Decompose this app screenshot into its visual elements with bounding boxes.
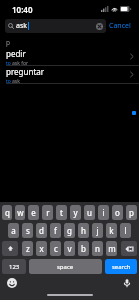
- staticText: q: [5, 207, 10, 218]
- button[interactable]: w: [15, 205, 25, 220]
- button[interactable]: preguntar: [0, 66, 139, 84]
- staticText: p: [129, 207, 134, 218]
- button[interactable]: s: [22, 223, 33, 238]
- staticText: e: [31, 207, 36, 218]
- staticText: b: [81, 243, 86, 254]
- staticText: 123: [9, 263, 20, 271]
- staticText: pedir: [6, 48, 26, 59]
- button[interactable]: space: [29, 259, 102, 274]
- button[interactable]: u: [84, 205, 95, 220]
- button[interactable]: a: [8, 223, 19, 238]
- button[interactable]: r: [42, 205, 53, 220]
- button[interactable]: j: [92, 223, 103, 238]
- button[interactable]: search: [105, 259, 137, 274]
- staticText: preguntar: [6, 66, 45, 77]
- staticText: z: [26, 243, 30, 254]
- button[interactable]: y: [70, 205, 81, 220]
- button[interactable]: e: [28, 205, 39, 220]
- button[interactable]: Backspace: [121, 241, 137, 256]
- staticText: ask: [16, 21, 28, 31]
- staticText: n: [95, 243, 100, 254]
- staticText: o: [115, 207, 120, 218]
- button[interactable]: Clear text: [96, 23, 103, 30]
- button[interactable]: o: [112, 205, 123, 220]
- button[interactable]: k: [106, 223, 117, 238]
- staticText: a: [11, 225, 16, 236]
- staticText: 10:40: [12, 4, 33, 15]
- staticText: j: [96, 225, 99, 236]
- button[interactable]: q: [2, 205, 12, 220]
- staticText: space: [57, 263, 74, 271]
- button[interactable]: pedir: [0, 48, 139, 66]
- button[interactable]: p: [126, 205, 137, 220]
- button[interactable]: Dictate: [122, 278, 132, 288]
- staticText: Cancel: [109, 21, 131, 31]
- staticText: to: [6, 60, 11, 65]
- button[interactable]: x: [36, 241, 47, 256]
- staticText: d: [39, 225, 44, 236]
- button[interactable]: b: [78, 241, 89, 256]
- button[interactable]: n: [92, 241, 103, 256]
- staticText: x: [39, 243, 44, 254]
- staticText: p: [6, 38, 10, 47]
- button[interactable]: d: [36, 223, 47, 238]
- staticText: m: [108, 243, 116, 254]
- button[interactable]: h: [78, 223, 89, 238]
- staticText: f: [54, 225, 57, 236]
- staticText: h: [81, 225, 86, 236]
- button[interactable]: v: [64, 241, 75, 256]
- staticText: k: [109, 225, 114, 236]
- staticText: t: [60, 207, 63, 218]
- staticText: c: [54, 243, 58, 254]
- button[interactable]: Emoji: [7, 278, 17, 288]
- staticText: s: [26, 225, 30, 236]
- button[interactable]: ask: [5, 19, 106, 33]
- staticText: g: [67, 225, 72, 236]
- staticText: r: [46, 207, 50, 218]
- button[interactable]: g: [64, 223, 75, 238]
- button[interactable]: t: [56, 205, 67, 220]
- staticText: y: [73, 207, 78, 218]
- staticText: v: [67, 243, 72, 254]
- staticText: w: [17, 207, 24, 218]
- button[interactable]: l: [120, 223, 131, 238]
- staticText: ask: [12, 78, 20, 83]
- button[interactable]: z: [22, 241, 33, 256]
- button[interactable]: c: [50, 241, 61, 256]
- staticText: to: [6, 78, 11, 83]
- staticText: search: [112, 263, 131, 271]
- staticText: ask for: [12, 60, 28, 65]
- button[interactable]: f: [50, 223, 61, 238]
- staticText: u: [87, 207, 92, 218]
- staticText: l: [124, 225, 127, 236]
- button[interactable]: m: [106, 241, 117, 256]
- button[interactable]: i: [98, 205, 109, 220]
- button[interactable]: Cancel: [106, 19, 134, 33]
- staticText: i: [102, 207, 105, 218]
- button[interactable]: 123: [2, 259, 26, 274]
- button[interactable]: Shift: [2, 241, 18, 256]
